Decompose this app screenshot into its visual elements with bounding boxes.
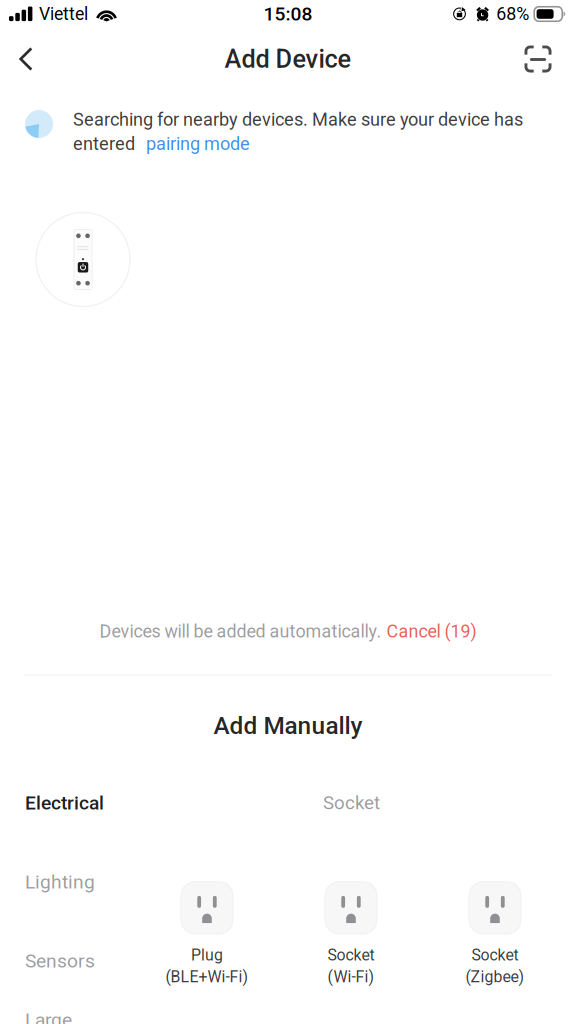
button[interactable]: Scan QR code (516, 37, 560, 81)
button[interactable]: Large (25, 1007, 145, 1024)
staticText: (Wi-Fi) (327, 967, 374, 986)
staticText: Sensors (25, 950, 95, 972)
staticText: (BLE+Wi-Fi) (165, 967, 248, 986)
staticText: Add Manually (213, 711, 362, 740)
staticText: (Zigbee) (465, 967, 524, 986)
staticText: Lighting (25, 871, 95, 893)
button[interactable]: pairing mode (135, 133, 250, 154)
button[interactable]: Back (4, 37, 48, 81)
staticText: Plug (191, 946, 223, 964)
button[interactable]: Plug (135, 882, 279, 986)
staticText: 68% (496, 3, 529, 24)
staticText: entered (73, 133, 135, 154)
button[interactable]: Electrical (25, 790, 145, 816)
button[interactable]: Lighting (25, 869, 145, 895)
staticText: Electrical (25, 792, 104, 814)
staticText: Searching for nearby devices. Make sure … (73, 109, 523, 130)
button[interactable]: Cancel (19) (381, 621, 476, 642)
button[interactable]: Socket (423, 882, 567, 986)
staticText: Viettel (39, 4, 88, 24)
staticText: Add Device (224, 44, 351, 74)
staticText: Socket (323, 792, 380, 814)
staticText: Socket (471, 946, 518, 964)
staticText: Cancel (19) (386, 621, 476, 642)
staticText: Large (25, 1009, 72, 1024)
button[interactable]: Discovered device (36, 212, 130, 306)
staticText: Devices will be added automatically. (99, 621, 381, 642)
staticText: Socket (327, 946, 374, 964)
staticText: 15:08 (263, 3, 312, 25)
button[interactable]: Sensors (25, 948, 145, 974)
button[interactable]: Socket (279, 882, 423, 986)
staticText: pairing mode (146, 133, 250, 154)
